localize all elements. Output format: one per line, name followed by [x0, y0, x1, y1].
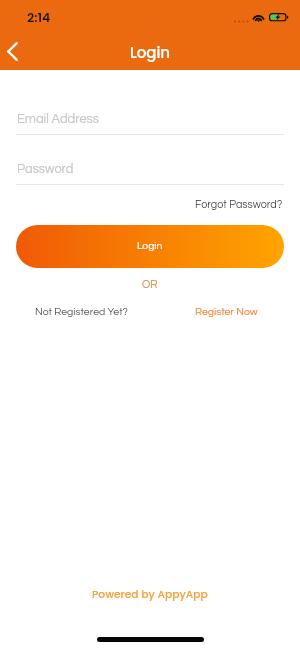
button[interactable]: Back	[0, 36, 25, 66]
staticText: Forgot Password?	[195, 199, 283, 210]
button[interactable]: Login	[16, 225, 284, 268]
staticText: Login	[130, 42, 171, 63]
staticText: OR	[142, 279, 158, 290]
button[interactable]: Register Now	[195, 306, 258, 317]
staticText: Password	[17, 163, 74, 176]
staticText: Email Address	[17, 113, 99, 126]
staticText: 2:14	[27, 9, 51, 27]
staticText: Login	[137, 241, 163, 252]
button[interactable]: Not Registered Yet?	[35, 306, 128, 317]
staticText: Register Now	[195, 306, 258, 317]
staticText: Not Registered Yet?	[35, 306, 128, 317]
staticText: Powered by AppyApp	[92, 587, 208, 602]
button[interactable]: Forgot Password?	[195, 199, 283, 210]
